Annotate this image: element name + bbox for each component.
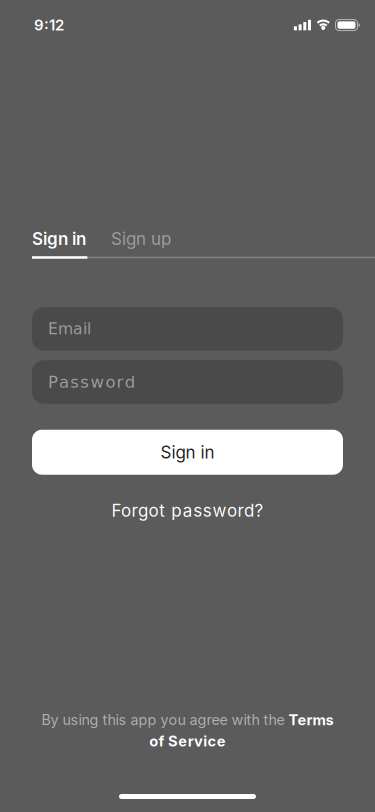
staticText: Forgot password?	[111, 500, 264, 521]
staticText: By using this app you agree with the	[41, 711, 288, 728]
button[interactable]: By using this app you agree with the	[41, 711, 333, 750]
staticText: Sign in	[160, 442, 214, 462]
button[interactable]: E	[0, 307, 375, 351]
button[interactable]: Sign up	[111, 229, 171, 249]
button[interactable]: Sign in	[32, 430, 343, 475]
button[interactable]: Sign in	[32, 229, 86, 249]
staticText: s	[70, 372, 79, 391]
staticText: m	[58, 320, 73, 338]
staticText: P	[48, 372, 58, 391]
staticText: of Service	[149, 732, 226, 750]
staticText: Sign up	[111, 229, 171, 249]
staticText: w	[90, 372, 104, 391]
button[interactable]: Forgot password?	[111, 500, 264, 521]
staticText: r	[117, 372, 124, 391]
staticText: i	[83, 320, 87, 338]
staticText: a	[59, 372, 69, 391]
staticText: l	[87, 320, 91, 338]
staticText: Terms	[288, 711, 333, 729]
staticText: Sign in	[32, 229, 86, 249]
staticText: 9:12	[34, 16, 64, 34]
staticText: o	[105, 372, 115, 391]
staticText: E	[48, 320, 58, 338]
button[interactable]: P	[0, 360, 375, 404]
staticText: d	[125, 372, 135, 391]
staticText: s	[80, 372, 89, 391]
staticText: a	[73, 320, 83, 338]
